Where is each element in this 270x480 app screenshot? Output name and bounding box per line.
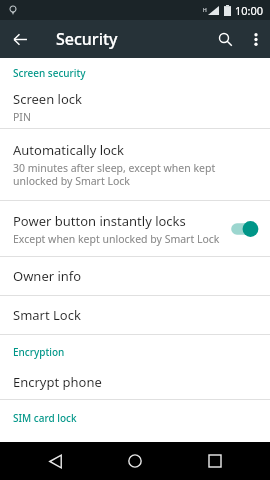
staticText: Owner info xyxy=(13,267,82,285)
button[interactable]: Home xyxy=(110,442,160,480)
button[interactable]: Power button instantly locks xyxy=(0,201,270,256)
staticText: Screen lock xyxy=(13,90,82,108)
staticText: 30 minutes after sleep, except when kept… xyxy=(13,161,257,188)
staticText: SIM card lock xyxy=(13,411,77,425)
staticText: Automatically lock xyxy=(13,141,125,159)
button[interactable]: Navigate up xyxy=(0,20,40,58)
button[interactable]: Smart Lock xyxy=(0,296,270,334)
staticText: Smart Lock xyxy=(13,306,81,324)
button[interactable]: Automatically lock xyxy=(0,129,270,200)
button[interactable]: Back xyxy=(30,442,80,480)
staticText: Screen security xyxy=(13,66,86,80)
button[interactable]: Encrypt phone xyxy=(0,365,270,399)
staticText: Except when kept unlocked by Smart Lock xyxy=(13,232,220,246)
button[interactable]: Owner info xyxy=(0,257,270,295)
staticText: PIN xyxy=(13,110,31,124)
staticText: Encryption xyxy=(13,345,65,359)
staticText: H xyxy=(203,7,207,14)
staticText: Security xyxy=(56,28,118,50)
button[interactable]: More options xyxy=(242,20,270,58)
button[interactable]: Search xyxy=(208,20,242,58)
staticText: Power button instantly locks xyxy=(13,212,186,230)
staticText: Encrypt phone xyxy=(13,373,102,391)
staticText: 10:00 xyxy=(235,3,264,18)
button[interactable]: Recent apps xyxy=(190,442,240,480)
button[interactable]: Screen lock xyxy=(0,86,270,128)
